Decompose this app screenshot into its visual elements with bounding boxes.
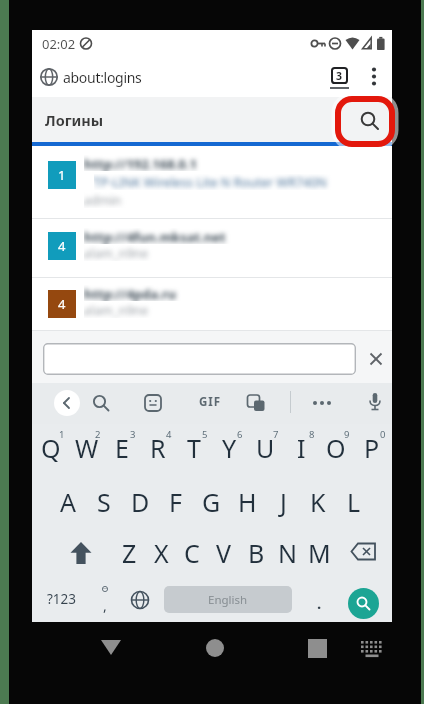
staticText: C xyxy=(184,536,200,570)
staticText: admin xyxy=(84,192,122,208)
button[interactable]: K xyxy=(301,478,335,526)
staticText: H xyxy=(238,485,257,519)
button[interactable]: English xyxy=(164,586,292,613)
button[interactable]: Z xyxy=(112,529,146,577)
staticText: L xyxy=(347,485,361,519)
staticText: 2 xyxy=(95,428,101,440)
staticText: 6 xyxy=(237,428,243,440)
staticText: X xyxy=(154,536,169,570)
button[interactable]: J xyxy=(266,478,300,526)
staticText: S xyxy=(97,485,111,519)
staticText: N xyxy=(278,536,298,570)
button[interactable] xyxy=(352,103,388,139)
button[interactable] xyxy=(87,389,115,417)
staticText: , xyxy=(103,596,107,615)
staticText: http://4fun.mksat.net xyxy=(84,228,226,244)
staticText: 8 xyxy=(309,428,315,440)
button[interactable] xyxy=(54,390,80,416)
staticText: alam_n9ne xyxy=(84,245,149,261)
button[interactable] xyxy=(32,146,392,220)
staticText: http://4pda.ru xyxy=(84,285,176,301)
button[interactable] xyxy=(242,389,270,417)
staticText: F xyxy=(169,485,182,519)
staticText: G xyxy=(202,485,221,519)
button[interactable]: U xyxy=(248,424,282,472)
button[interactable]: GIF xyxy=(192,390,228,414)
staticText: R xyxy=(150,431,166,465)
button[interactable]: . xyxy=(311,585,327,621)
staticText: Y xyxy=(222,431,237,465)
staticText: Логины xyxy=(45,110,104,130)
staticText: . xyxy=(317,593,322,613)
button[interactable]: T xyxy=(177,424,211,472)
staticText: English xyxy=(208,592,248,608)
staticText: 5 xyxy=(202,428,208,440)
staticText: O xyxy=(326,431,346,465)
staticText: 4 xyxy=(58,237,66,255)
button[interactable]: ?123 xyxy=(40,583,84,615)
button[interactable] xyxy=(364,347,388,371)
button[interactable]: W xyxy=(70,424,104,472)
staticText: Z xyxy=(122,536,137,570)
button[interactable]: L xyxy=(337,478,371,526)
button[interactable]: C xyxy=(175,529,209,577)
button[interactable]: 3 xyxy=(331,67,348,84)
staticText: 9 xyxy=(344,428,350,440)
staticText: 02:02 xyxy=(42,35,76,53)
button[interactable]: Y xyxy=(212,424,246,472)
button[interactable]: Q xyxy=(34,424,68,472)
staticText: 4 xyxy=(58,295,66,313)
button[interactable]: R xyxy=(141,424,175,472)
button[interactable] xyxy=(63,529,99,577)
button[interactable] xyxy=(348,588,379,619)
button[interactable]: M xyxy=(302,529,336,577)
staticText: W xyxy=(75,431,99,465)
button[interactable]: I xyxy=(284,424,318,472)
staticText: 1 xyxy=(59,428,65,440)
staticText: 0 xyxy=(380,428,386,440)
button[interactable]: , xyxy=(95,582,115,622)
button[interactable]: N xyxy=(271,529,305,577)
button[interactable] xyxy=(139,389,167,417)
staticText: 1 xyxy=(58,166,66,184)
staticText: 3 xyxy=(336,69,343,83)
staticText: A xyxy=(60,485,76,519)
button[interactable] xyxy=(43,343,356,375)
button[interactable] xyxy=(32,219,392,278)
button[interactable]: S xyxy=(87,478,121,526)
button[interactable] xyxy=(346,529,382,577)
staticText: http://192.168.0.1 xyxy=(84,155,197,171)
button[interactable] xyxy=(32,278,392,331)
staticText: GIF xyxy=(199,394,222,410)
staticText: I xyxy=(297,431,306,465)
staticText: D xyxy=(131,485,150,519)
button[interactable]: F xyxy=(158,478,192,526)
button[interactable] xyxy=(128,588,152,612)
staticText: E xyxy=(115,431,129,465)
button[interactable]: X xyxy=(144,529,178,577)
staticText: ?123 xyxy=(47,590,77,608)
button[interactable]: O xyxy=(319,424,353,472)
button[interactable]: P xyxy=(355,424,389,472)
button[interactable]: V xyxy=(207,529,241,577)
staticText: 7 xyxy=(273,428,279,440)
button[interactable]: E xyxy=(105,424,139,472)
staticText: J xyxy=(280,485,287,519)
button[interactable]: H xyxy=(230,478,264,526)
staticText: alam_n9ne xyxy=(84,302,149,318)
staticText: 3 xyxy=(130,428,136,440)
staticText: P xyxy=(364,431,380,465)
button[interactable]: G xyxy=(194,478,228,526)
button[interactable] xyxy=(308,389,336,417)
button[interactable]: A xyxy=(51,478,85,526)
staticText: M xyxy=(308,536,331,570)
button[interactable]: D xyxy=(123,478,157,526)
staticText: 4 xyxy=(166,428,172,440)
staticText: U xyxy=(256,431,275,465)
staticText: about:logins xyxy=(63,68,142,87)
staticText: B xyxy=(248,536,265,570)
button[interactable] xyxy=(361,388,389,416)
button[interactable]: B xyxy=(239,529,273,577)
staticText: TP-LINK Wireless Lite N Router WR740N xyxy=(94,174,327,190)
button[interactable] xyxy=(365,62,383,92)
